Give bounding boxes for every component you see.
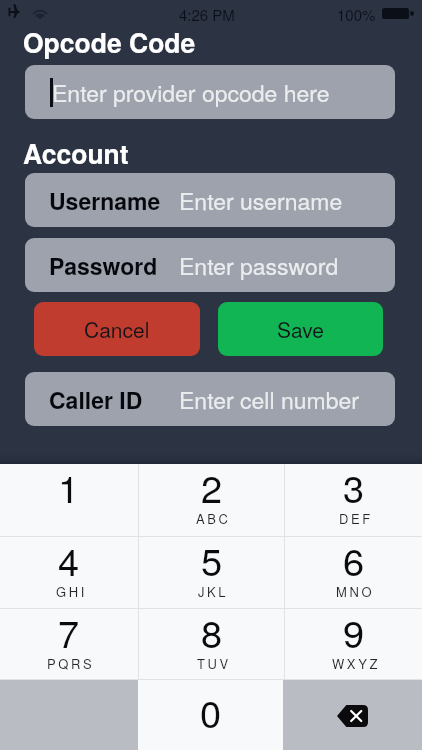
staticText: DEF (339, 509, 373, 528)
button[interactable]: Delete (283, 680, 422, 750)
button[interactable]: 2 (139, 464, 284, 536)
staticText: Password (49, 249, 158, 282)
staticText: Enter provider opcode here (52, 76, 330, 109)
staticText: 6 (343, 532, 365, 586)
button[interactable]: Cancel (34, 302, 200, 356)
staticText: 3 (343, 459, 365, 513)
staticText: 7 (58, 604, 80, 658)
button[interactable]: Username (25, 173, 395, 227)
staticText: 1 (58, 459, 80, 513)
button[interactable]: 1 (0, 464, 138, 536)
staticText: Enter password (179, 249, 339, 282)
button[interactable]: Enter provider opcode here (25, 65, 395, 119)
staticText: 0 (200, 684, 222, 738)
staticText: Caller ID (49, 383, 143, 416)
button[interactable]: Password (25, 238, 395, 292)
staticText: Account (23, 134, 129, 172)
button[interactable]: 3 (285, 464, 422, 536)
staticText: Enter username (179, 184, 343, 217)
button[interactable]: 4 (0, 537, 138, 608)
staticText: MNO (336, 582, 375, 601)
staticText: GHI (56, 582, 87, 601)
button[interactable]: 6 (285, 537, 422, 608)
button[interactable]: 0 (138, 680, 283, 750)
staticText: 8 (201, 604, 223, 658)
staticText: Opcode Code (23, 23, 196, 61)
staticText: PQRS (47, 654, 95, 673)
staticText: 9 (343, 604, 365, 658)
staticText: Save (277, 314, 325, 344)
staticText: WXYZ (332, 654, 380, 673)
button[interactable]: 5 (139, 537, 284, 608)
button[interactable]: 7 (0, 609, 138, 679)
staticText: Enter cell number (179, 383, 359, 416)
button[interactable]: Save (218, 302, 383, 356)
staticText: 4 (58, 532, 80, 586)
staticText: 5 (201, 532, 223, 586)
staticText: 2 (201, 459, 223, 513)
staticText: 100% (337, 4, 376, 25)
button[interactable]: 9 (285, 609, 422, 679)
staticText: JKL (198, 582, 229, 601)
staticText: ABC (196, 509, 231, 528)
button[interactable]: Caller ID (25, 372, 395, 426)
staticText: Username (49, 184, 161, 217)
button[interactable]: 8 (139, 609, 284, 679)
staticText: 4:26 PM (179, 4, 235, 25)
staticText: TUV (197, 654, 231, 673)
staticText: Cancel (84, 314, 150, 344)
